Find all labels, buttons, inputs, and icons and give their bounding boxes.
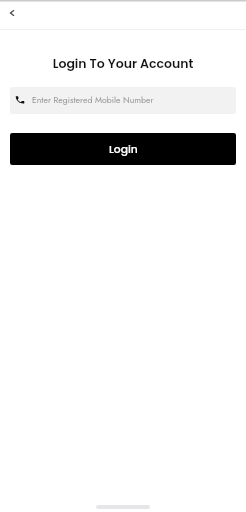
staticText: Login	[109, 142, 138, 157]
staticText: Login To Your Account	[0, 55, 246, 72]
button[interactable]: Enter Registered Mobile Number	[10, 87, 236, 114]
staticText: Enter Registered Mobile Number	[32, 94, 154, 107]
button[interactable]: Back	[2, 3, 22, 23]
button[interactable]: Login	[10, 133, 236, 165]
